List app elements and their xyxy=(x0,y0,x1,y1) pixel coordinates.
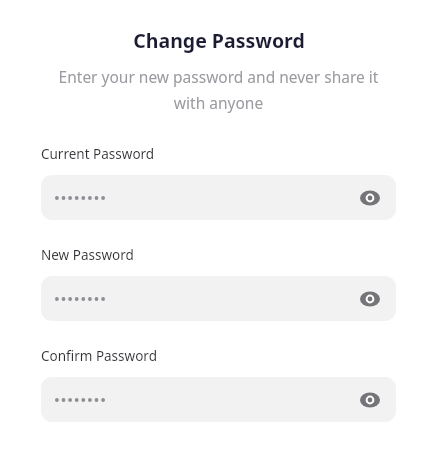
button[interactable]: Show password xyxy=(356,386,384,414)
staticText: Current Password xyxy=(41,145,155,163)
button[interactable]: Show password xyxy=(356,184,384,212)
other: Show password xyxy=(358,287,382,311)
staticText: Enter your new password and never share … xyxy=(44,66,393,114)
staticText: New Password xyxy=(41,246,134,264)
button[interactable]: Show password xyxy=(41,276,396,321)
button[interactable]: Show password xyxy=(356,285,384,313)
staticText: Change Password xyxy=(133,27,305,54)
button[interactable]: Show password xyxy=(41,175,396,220)
other: Show password xyxy=(358,388,382,412)
other: Show password xyxy=(358,186,382,210)
staticText: Confirm Password xyxy=(41,347,157,365)
button[interactable]: Show password xyxy=(41,377,396,422)
